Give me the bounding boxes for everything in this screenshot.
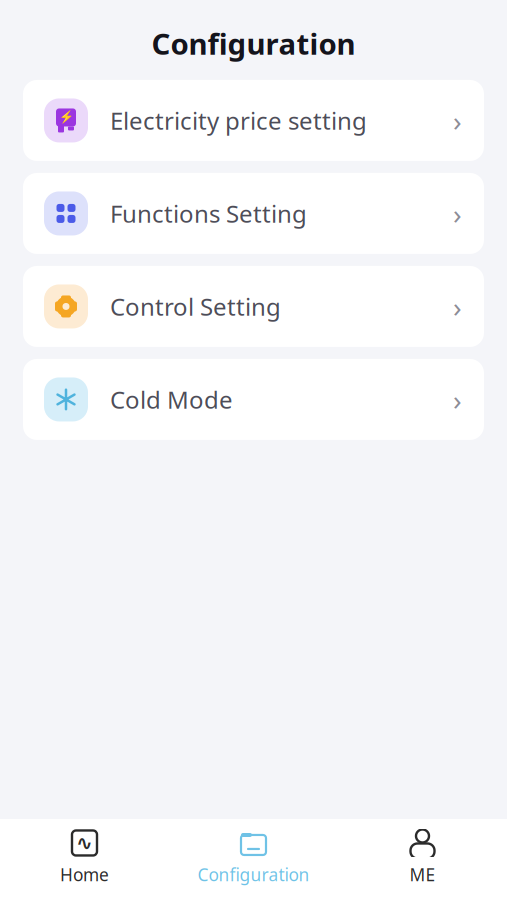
staticText: Functions Setting <box>110 197 307 229</box>
staticText: Cold Mode <box>110 383 233 415</box>
button[interactable]: Home <box>0 819 169 900</box>
button[interactable]: ⚡ <box>23 80 484 161</box>
button[interactable]: Functions Setting <box>23 173 484 254</box>
staticText: Control Setting <box>110 290 281 322</box>
button[interactable]: Cold Mode <box>23 359 484 440</box>
button[interactable]: Configuration <box>169 819 338 900</box>
staticText: › <box>453 102 462 139</box>
staticText: ME <box>409 863 435 886</box>
button[interactable]: ME <box>338 819 507 900</box>
staticText: Electricity price setting <box>110 104 367 136</box>
staticText: Home <box>60 863 109 886</box>
staticText: ∿ <box>76 832 93 854</box>
staticText: Configuration <box>151 24 355 63</box>
staticText: ⚡ <box>58 110 73 123</box>
staticText: Configuration <box>197 863 309 886</box>
staticText: › <box>453 195 462 232</box>
button[interactable]: Control Setting <box>23 266 484 347</box>
staticText: › <box>453 288 462 325</box>
staticText: › <box>453 381 462 418</box>
